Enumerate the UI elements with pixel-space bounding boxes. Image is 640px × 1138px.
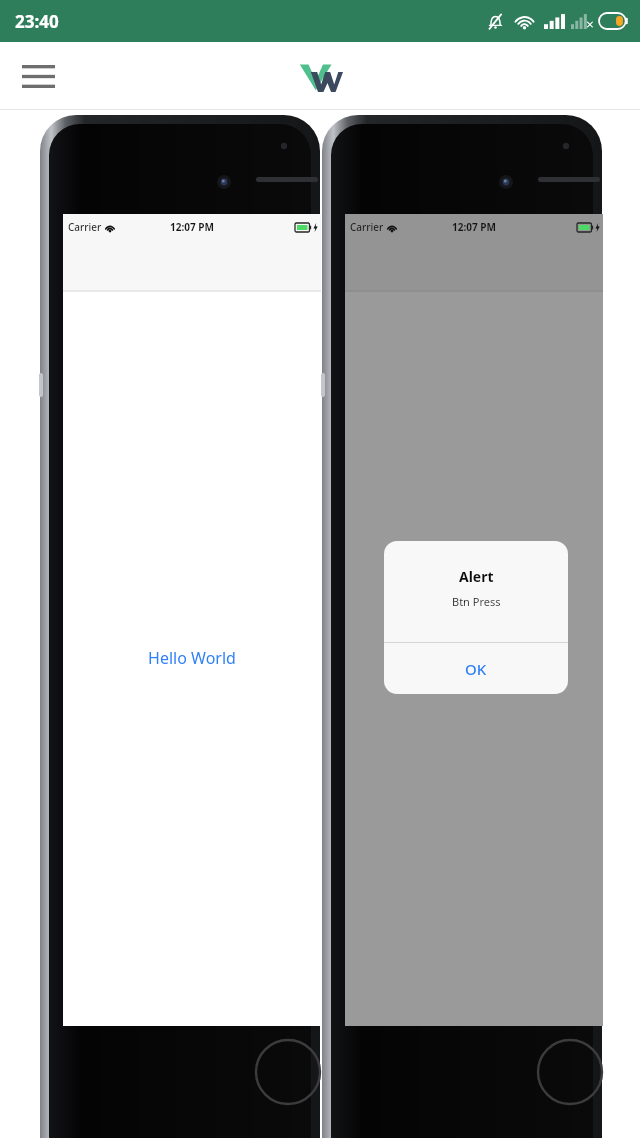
button[interactable]: OK <box>384 643 568 694</box>
staticText: Btn Press <box>452 594 501 609</box>
staticText: Carrier <box>350 220 384 234</box>
staticText: OK <box>465 659 487 679</box>
staticText: Carrier <box>68 220 102 234</box>
staticText: 12:07 PM <box>452 220 496 234</box>
staticText: 12:07 PM <box>170 220 214 234</box>
staticText: Alert <box>459 567 494 586</box>
staticText: 23:40 <box>15 10 59 33</box>
button[interactable]: Vue Weex logo, home <box>291 51 349 101</box>
button[interactable]: Open navigation menu <box>12 53 64 99</box>
staticText: Hello World <box>148 647 236 669</box>
